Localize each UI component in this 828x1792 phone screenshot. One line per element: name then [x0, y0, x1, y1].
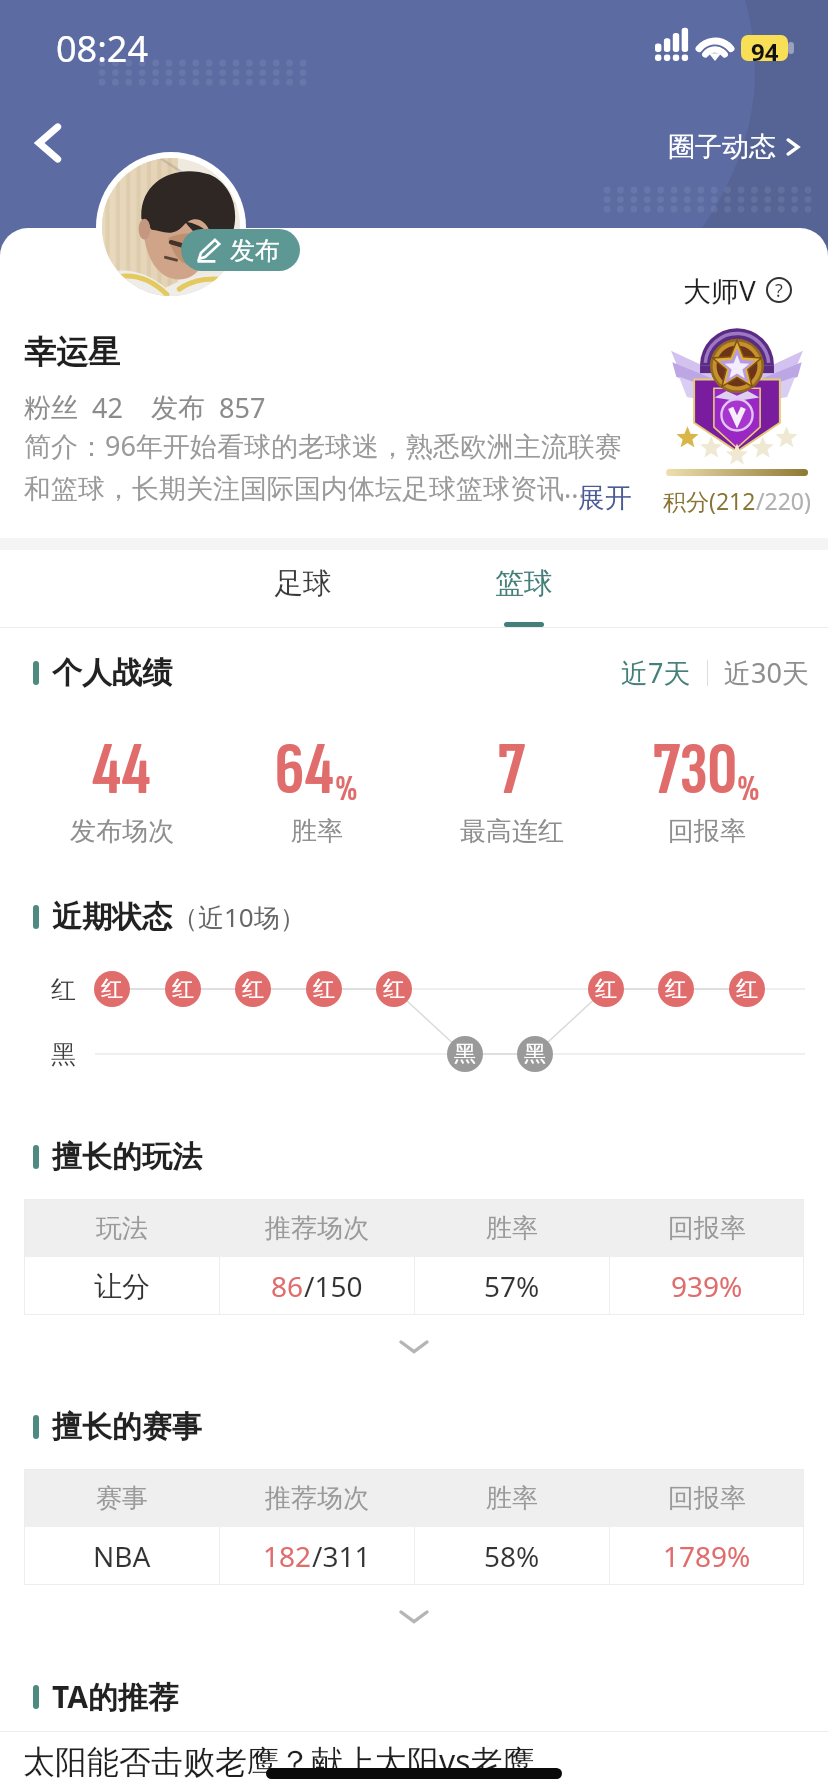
staticText: NBA: [93, 1537, 151, 1575]
staticText: 胜率: [291, 815, 343, 848]
staticText: 42: [92, 389, 123, 426]
staticText: 个人战绩: [52, 654, 172, 692]
staticText: 推荐场次: [265, 1212, 369, 1245]
staticText: 胜率: [486, 1482, 538, 1515]
staticText: 939%: [671, 1267, 743, 1305]
staticText: 发布: [151, 391, 205, 425]
staticText: 让分: [94, 1269, 150, 1304]
staticText: 发布: [230, 235, 280, 266]
staticText: 近期状态: [52, 898, 172, 936]
staticText: 大师V: [683, 271, 756, 309]
button[interactable]: 展开更多: [0, 1315, 828, 1378]
button[interactable]: 发布: [181, 229, 300, 271]
staticText: ?: [775, 278, 783, 303]
staticText: 182: [263, 1537, 312, 1575]
staticText: 黑: [51, 1039, 76, 1070]
staticText: 红: [736, 975, 758, 1003]
staticText: 最高连红: [460, 815, 564, 848]
staticText: 红: [242, 975, 264, 1003]
staticText: 太阳能否击败老鹰？献上太阳vs老鹰: [23, 1739, 535, 1783]
staticText: 红: [172, 975, 194, 1003]
staticText: /220): [756, 485, 811, 516]
staticText: 幸运星: [24, 332, 120, 372]
staticText: 730: [653, 726, 737, 815]
staticText: 发布场次: [70, 815, 174, 848]
staticText: 积分(212: [663, 485, 756, 516]
staticText: 黑: [524, 1040, 546, 1068]
staticText: /311: [312, 1537, 371, 1575]
staticText: 红: [313, 975, 335, 1003]
button[interactable]: 足球: [258, 550, 348, 610]
staticText: （近10场）: [172, 899, 306, 935]
staticText: 红: [101, 975, 123, 1003]
button[interactable]: 展开: [578, 481, 632, 515]
staticText: 简介：96年开始看球的老球迷，熟悉欧洲主流联赛和篮球，长期关注国际国内体坛足球篮…: [24, 427, 634, 506]
staticText: 篮球: [495, 565, 553, 602]
staticText: 黑: [454, 1040, 476, 1068]
staticText: 57%: [484, 1267, 540, 1305]
staticText: 赛事: [96, 1482, 148, 1515]
staticText: 58%: [484, 1537, 540, 1575]
staticText: 擅长的赛事: [52, 1408, 202, 1446]
button[interactable]: 返回: [18, 112, 80, 174]
staticText: 94: [751, 35, 779, 61]
staticText: 44: [92, 726, 151, 815]
staticText: 粉丝: [24, 391, 78, 425]
staticText: 红: [383, 975, 405, 1003]
staticText: %: [335, 768, 358, 811]
staticText: 64: [275, 726, 335, 815]
staticText: /150: [304, 1267, 363, 1305]
button[interactable]: 说明: [766, 277, 792, 303]
staticText: 红: [51, 974, 76, 1005]
staticText: 1789%: [663, 1537, 751, 1575]
button[interactable]: 近30天: [718, 650, 815, 695]
staticText: 推荐场次: [265, 1482, 369, 1515]
staticText: 回报率: [668, 1212, 746, 1245]
staticText: 857: [219, 389, 266, 426]
staticText: 08:24: [56, 24, 149, 73]
staticText: 近30天: [724, 654, 809, 691]
button[interactable]: 圈子动态: [656, 124, 812, 170]
staticText: 足球: [274, 565, 332, 602]
staticText: TA的推荐: [52, 1676, 178, 1717]
staticText: 近7天: [621, 654, 691, 691]
staticText: 86: [271, 1267, 304, 1305]
staticText: 回报率: [668, 1482, 746, 1515]
staticText: 展开: [578, 481, 632, 515]
button[interactable]: 近7天: [615, 650, 697, 695]
staticText: %: [737, 768, 760, 811]
button[interactable]: 头像: [102, 158, 240, 296]
staticText: 圈子动态: [668, 130, 776, 164]
staticText: 玩法: [96, 1212, 148, 1245]
staticText: 胜率: [486, 1212, 538, 1245]
staticText: 擅长的玩法: [52, 1138, 202, 1176]
button[interactable]: 展开更多: [0, 1585, 828, 1648]
button[interactable]: 篮球: [479, 550, 569, 627]
staticText: 红: [665, 975, 687, 1003]
staticText: 回报率: [668, 815, 746, 848]
staticText: 7: [498, 726, 525, 815]
staticText: 红: [595, 975, 617, 1003]
